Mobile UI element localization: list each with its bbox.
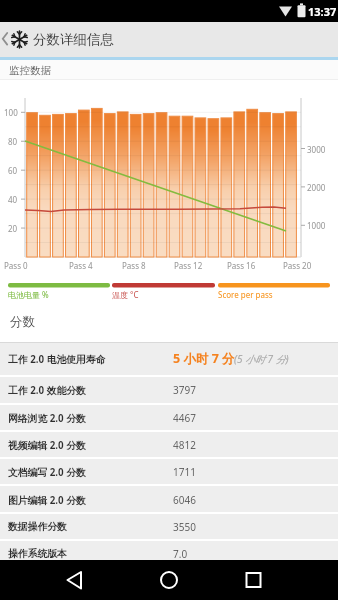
staticText: 40 (8, 194, 18, 205)
button[interactable]: 图片编辑 2.0 分数 (0, 487, 338, 513)
staticText: Pass 8 (122, 260, 146, 271)
button[interactable]: 操作系统版本 (0, 541, 338, 567)
staticText: 80 (8, 136, 18, 147)
staticText: 4467 (173, 411, 196, 425)
staticText: 3000 (307, 144, 326, 155)
staticText: 数据操作分数 (8, 521, 67, 533)
staticText: Pass 12 (174, 260, 203, 271)
staticText: 5 小时 7 分 (173, 350, 235, 366)
button[interactable]: 网络浏览 2.0 分数 (0, 405, 338, 431)
staticText: 网络浏览 2.0 分数 (8, 412, 86, 425)
staticText: Score per pass (218, 289, 273, 300)
staticText: 20 (8, 223, 18, 234)
staticText: 3797 (173, 383, 196, 397)
staticText: 4812 (173, 438, 196, 452)
staticText: 6046 (173, 493, 196, 507)
button[interactable]: 文档编写 2.0 分数 (0, 459, 338, 485)
staticText: Pass 4 (69, 260, 93, 271)
button[interactable]: 视频编辑 2.0 分数 (0, 432, 338, 458)
staticText: 文档编写 2.0 分数 (8, 466, 86, 479)
staticText: 图片编辑 2.0 分数 (8, 494, 86, 507)
staticText: 温度 °C (112, 289, 139, 300)
staticText: 1000 (307, 220, 326, 231)
staticText: 3550 (173, 520, 196, 534)
staticText: 1711 (173, 465, 196, 479)
staticText: 电池电量 % (8, 289, 49, 300)
staticText: 操作系统版本 (8, 548, 67, 560)
button[interactable]: 分数详细信息 (0, 22, 338, 57)
staticText: 2000 (307, 182, 326, 193)
button[interactable]: 数据操作分数 (0, 514, 338, 540)
staticText: 分数 (10, 314, 35, 330)
staticText: (5 小时 7 分) (234, 352, 289, 366)
staticText: Pass 16 (227, 260, 256, 271)
button[interactable]: 工作 2.0 效能分数 (0, 377, 338, 403)
button[interactable] (44, 560, 114, 600)
staticText: 13:37 (308, 4, 337, 19)
button[interactable] (219, 560, 289, 600)
staticText: 监控数据 (9, 64, 51, 77)
staticText: Pass 20 (283, 260, 312, 271)
staticText: 视频编辑 2.0 分数 (8, 439, 86, 452)
staticText: 工作 2.0 电池使用寿命 (8, 353, 106, 366)
staticText: 分数详细信息 (33, 31, 114, 47)
staticText: 工作 2.0 效能分数 (8, 384, 86, 397)
staticText: Pass 0 (4, 260, 28, 271)
staticText: 60 (8, 165, 18, 176)
button[interactable]: 工作 2.0 电池使用寿命 (0, 343, 338, 375)
button[interactable] (134, 560, 204, 600)
staticText: 7.0 (173, 547, 188, 561)
staticText: 100 (4, 107, 18, 118)
